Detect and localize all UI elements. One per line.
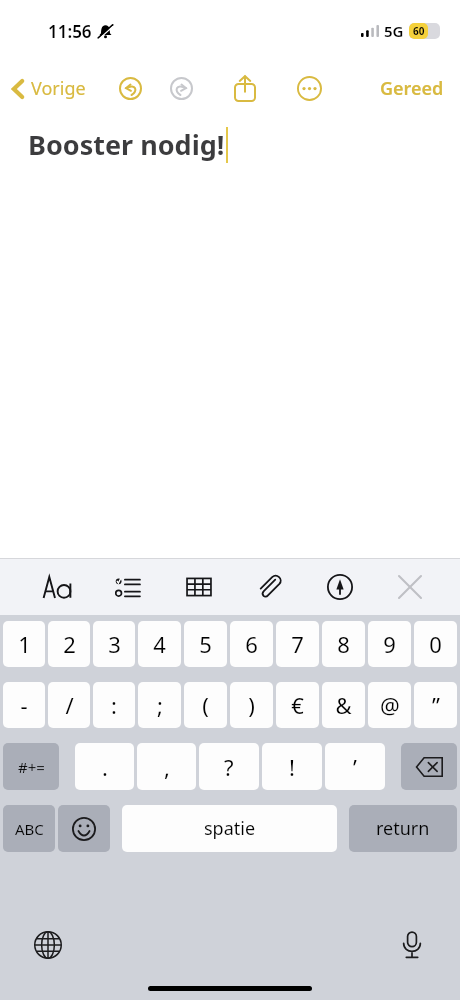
button[interactable]: ABC: [3, 805, 55, 852]
button[interactable]: 6: [230, 621, 273, 667]
button[interactable]: €: [276, 682, 319, 728]
staticText: 0: [429, 629, 442, 659]
staticText: :: [111, 690, 117, 720]
button[interactable]: 5: [184, 621, 227, 667]
staticText: 9: [383, 629, 396, 659]
button[interactable]: #+=: [3, 743, 59, 790]
staticText: 5G: [384, 21, 404, 41]
button[interactable]: (: [184, 682, 227, 728]
button[interactable]: Text format: [36, 565, 80, 609]
button[interactable]: :: [93, 682, 135, 728]
button[interactable]: Checklist: [106, 565, 150, 609]
staticText: 3: [108, 629, 121, 659]
button[interactable]: ’: [325, 743, 385, 790]
staticText: return: [376, 816, 430, 841]
staticText: 2: [63, 629, 76, 659]
staticText: 6: [245, 629, 258, 659]
button[interactable]: 3: [93, 621, 135, 667]
staticText: 8: [337, 629, 350, 659]
staticText: ): [248, 690, 255, 720]
staticText: ”: [432, 690, 440, 720]
button[interactable]: 9: [368, 621, 411, 667]
button[interactable]: ): [230, 682, 273, 728]
button[interactable]: .: [75, 743, 134, 790]
button[interactable]: 4: [138, 621, 181, 667]
staticText: 11:56: [48, 20, 92, 43]
button[interactable]: 7: [276, 621, 319, 667]
button[interactable]: Change keyboard: [26, 923, 70, 967]
button[interactable]: /: [48, 682, 90, 728]
button[interactable]: !: [262, 743, 322, 790]
button[interactable]: Redo: [159, 66, 203, 110]
button[interactable]: Share: [223, 66, 267, 110]
button[interactable]: Gereed: [374, 71, 450, 106]
staticText: Booster nodig!: [28, 126, 225, 163]
button[interactable]: Vorige: [8, 72, 90, 105]
staticText: ,: [164, 752, 170, 782]
staticText: ;: [157, 690, 163, 720]
button[interactable]: spatie: [122, 805, 337, 852]
button[interactable]: Attach: [247, 565, 291, 609]
button[interactable]: Markup: [318, 565, 362, 609]
staticText: ?: [224, 752, 234, 782]
staticText: -: [20, 690, 28, 720]
button[interactable]: Undo: [108, 66, 152, 110]
staticText: 60: [413, 24, 425, 38]
button[interactable]: 1: [3, 621, 45, 667]
button[interactable]: Table: [177, 565, 221, 609]
staticText: @: [380, 690, 400, 720]
staticText: Vorige: [31, 76, 86, 101]
staticText: 4: [153, 629, 166, 659]
staticText: /: [65, 690, 74, 720]
button[interactable]: ,: [137, 743, 196, 790]
staticText: #+=: [18, 757, 45, 777]
button[interactable]: More options: [287, 66, 331, 110]
button[interactable]: Close keyboard: [388, 565, 432, 609]
button[interactable]: Emoji: [58, 805, 110, 852]
button[interactable]: &: [322, 682, 365, 728]
staticText: &: [335, 690, 352, 720]
staticText: €: [291, 690, 304, 720]
staticText: !: [289, 752, 295, 782]
staticText: .: [102, 752, 108, 782]
button[interactable]: 2: [48, 621, 90, 667]
button[interactable]: return: [349, 805, 457, 852]
staticText: Gereed: [380, 76, 444, 101]
button[interactable]: ;: [138, 682, 181, 728]
button[interactable]: @: [368, 682, 411, 728]
staticText: 1: [18, 629, 31, 659]
staticText: ’: [353, 752, 357, 782]
button[interactable]: 0: [414, 621, 457, 667]
staticText: spatie: [204, 816, 256, 841]
button[interactable]: 8: [322, 621, 365, 667]
staticText: 7: [291, 629, 304, 659]
button[interactable]: ”: [414, 682, 457, 728]
button[interactable]: Backspace: [401, 743, 457, 790]
button[interactable]: -: [3, 682, 45, 728]
staticText: ABC: [15, 819, 44, 839]
button[interactable]: ?: [199, 743, 259, 790]
staticText: 5: [199, 629, 212, 659]
staticText: (: [202, 690, 209, 720]
button[interactable]: Dictate: [390, 923, 434, 967]
